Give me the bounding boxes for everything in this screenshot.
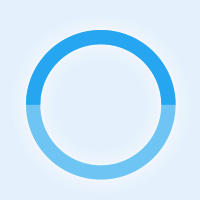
button[interactable]: Progress 50 percent — [0, 0, 200, 200]
